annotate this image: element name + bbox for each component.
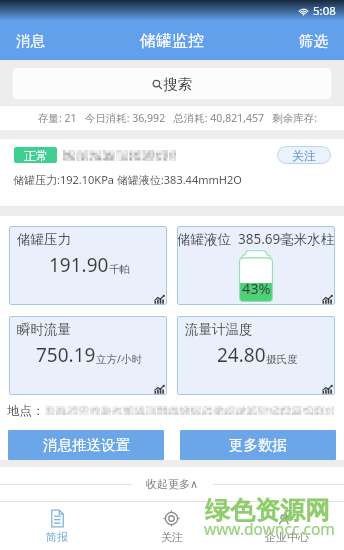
staticText: 正常 (24, 148, 48, 163)
staticText: 绿色资源网 (205, 495, 330, 526)
button[interactable]: 瞬时流量 (9, 316, 167, 395)
staticText: www.downcc.com (204, 518, 335, 539)
staticText: 搜索 (163, 75, 192, 93)
staticText: 关注 (161, 530, 183, 544)
staticText: 流量计温度 (185, 321, 253, 338)
button[interactable]: 收起更多∧ (0, 467, 344, 501)
staticText: 5:08 (313, 3, 336, 19)
staticText: 摄氏度 (266, 353, 298, 366)
button[interactable]: 储罐压力 (9, 226, 167, 305)
staticText: 千帕 (109, 263, 130, 276)
button[interactable]: 简报 (0, 502, 114, 550)
staticText: 立方/小时 (96, 352, 142, 366)
staticText: 企业中心 (265, 530, 309, 544)
button[interactable]: 搜索 (13, 68, 331, 99)
staticText: 地点： (7, 403, 45, 418)
button[interactable]: 消息推送设置 (8, 430, 164, 460)
staticText: 收起更多∧ (146, 477, 199, 491)
button[interactable]: 关注 (277, 146, 331, 164)
button[interactable]: 消息 (0, 22, 61, 60)
staticText: 简报 (46, 530, 68, 544)
staticText: 储罐压力:192.10KPa 储罐液位:383.44mmH2O (13, 172, 242, 187)
button[interactable]: 筛选 (283, 22, 344, 60)
staticText: 消息推送设置 (43, 436, 130, 454)
staticText: 存量: 21 今日消耗: 36,992 总消耗: 40,821,457 剩余库存… (38, 111, 318, 125)
staticText: 191.90 (49, 252, 109, 278)
button[interactable]: 流量计温度 (177, 316, 335, 395)
button[interactable]: 企业中心 (229, 502, 344, 550)
staticText: 筛选 (299, 32, 328, 50)
staticText: 储罐压力 (17, 231, 71, 248)
button[interactable]: 关注 (114, 502, 229, 550)
staticText: 储罐液位 385.69毫米水柱 (177, 230, 335, 248)
staticText: 瞬时流量 (17, 321, 71, 338)
staticText: 储罐监控 (140, 31, 204, 51)
staticText: 43% (242, 278, 271, 298)
staticText: 消息 (16, 32, 45, 50)
staticText: 24.80 (217, 342, 266, 368)
button[interactable]: 储罐液位 385.69毫米水柱 (177, 226, 335, 305)
staticText: 750.19 (36, 342, 96, 368)
staticText: 更多数据 (229, 436, 287, 454)
staticText: 关注 (292, 148, 316, 163)
button[interactable]: 更多数据 (180, 430, 336, 460)
